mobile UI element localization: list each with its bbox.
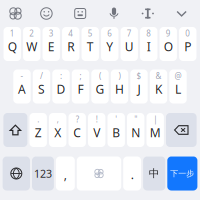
button[interactable]: 8 (140, 27, 157, 61)
staticText: S (38, 81, 45, 97)
staticText: 8 (146, 28, 151, 39)
staticText: H (115, 81, 124, 97)
staticText: J (137, 81, 140, 97)
staticText: B (112, 124, 120, 140)
button[interactable]: $ (130, 69, 148, 103)
button[interactable]: & (150, 69, 167, 103)
staticText: 7 (127, 28, 132, 39)
button[interactable]: Memoji (66, 2, 95, 24)
staticText: 123 (34, 166, 52, 181)
staticText: ' (115, 114, 117, 125)
staticText: 中 (149, 167, 160, 180)
staticText: ? (76, 114, 79, 125)
staticText: V (93, 124, 100, 140)
staticText: ! (96, 114, 98, 125)
staticText: , (64, 166, 67, 182)
button[interactable]: , (49, 113, 66, 147)
staticText: : (60, 71, 62, 81)
button[interactable]: Space (77, 156, 121, 190)
staticText: / (40, 71, 43, 81)
staticText: L (175, 81, 181, 97)
button[interactable]: / (33, 69, 50, 103)
button[interactable]: Next keyboard (3, 156, 30, 190)
staticText: 3 (49, 28, 54, 39)
staticText: F (77, 81, 83, 97)
button[interactable]: ! (88, 113, 105, 147)
staticText: 9 (166, 28, 171, 39)
staticText: T (87, 38, 94, 54)
button[interactable]: 2 (23, 27, 40, 61)
button[interactable]: 5 (81, 27, 99, 61)
button[interactable]: Stickers (4, 2, 27, 24)
staticText: E (48, 38, 55, 54)
staticText: $ (136, 71, 141, 81)
button[interactable]: , (56, 156, 75, 190)
button[interactable]: 下一步 (167, 156, 197, 190)
button[interactable]: 0 (179, 27, 196, 61)
button[interactable]: Hide keyboard (167, 2, 196, 24)
staticText: ) (118, 71, 120, 81)
staticText: 2 (29, 28, 34, 39)
staticText: 5 (88, 28, 93, 39)
staticText: I (147, 38, 151, 54)
button[interactable]: 9 (159, 27, 177, 61)
button[interactable]: Delete (166, 113, 197, 147)
button[interactable]: . (29, 113, 47, 147)
button[interactable]: Move cursor (133, 2, 162, 24)
button[interactable]: " (127, 113, 144, 147)
button[interactable]: Shift (3, 113, 27, 147)
staticText: " (134, 114, 137, 125)
staticText: C (73, 124, 81, 140)
button[interactable]: Emoji (32, 2, 61, 24)
staticText: N (131, 124, 140, 140)
button[interactable]: 1 (3, 27, 21, 61)
staticText: 0 (185, 28, 190, 39)
button[interactable]: 中 (143, 156, 165, 190)
staticText: P (184, 38, 191, 54)
button[interactable]: ( (91, 69, 109, 103)
button[interactable]: - (13, 69, 31, 103)
button[interactable]: ; (72, 69, 89, 103)
button[interactable]: | (146, 113, 164, 147)
staticText: R (67, 38, 74, 54)
staticText: O (164, 38, 173, 54)
button[interactable]: @ (169, 69, 187, 103)
staticText: K (155, 81, 162, 97)
staticText: A (18, 81, 26, 97)
staticText: | (153, 114, 157, 125)
button[interactable]: 3 (42, 27, 60, 61)
staticText: @ (174, 71, 181, 81)
staticText: D (56, 81, 65, 97)
staticText: W (26, 38, 37, 54)
button[interactable]: : (52, 69, 70, 103)
button[interactable]: . (123, 156, 141, 190)
staticText: & (155, 71, 161, 81)
staticText: 4 (68, 28, 73, 39)
staticText: Q (8, 38, 17, 54)
staticText: - (20, 71, 23, 81)
button[interactable]: 7 (120, 27, 138, 61)
button[interactable]: 4 (62, 27, 79, 61)
staticText: 6 (107, 28, 112, 39)
staticText: X (54, 124, 61, 140)
staticText: U (125, 38, 134, 54)
button[interactable]: ? (68, 113, 86, 147)
staticText: . (37, 114, 39, 125)
staticText: , (57, 114, 59, 125)
button[interactable]: ) (111, 69, 128, 103)
staticText: Z (35, 124, 42, 140)
staticText: 下一步 (170, 169, 194, 178)
staticText: ; (79, 71, 81, 81)
staticText: 1 (10, 28, 15, 39)
staticText: ( (99, 71, 101, 81)
staticText: M (150, 124, 161, 140)
staticText: Y (106, 38, 113, 54)
button[interactable]: 123 (32, 156, 54, 190)
button[interactable]: Dictation (100, 2, 128, 24)
button[interactable]: ' (107, 113, 125, 147)
staticText: G (95, 81, 104, 97)
button[interactable]: 6 (101, 27, 118, 61)
staticText: . (131, 166, 134, 182)
